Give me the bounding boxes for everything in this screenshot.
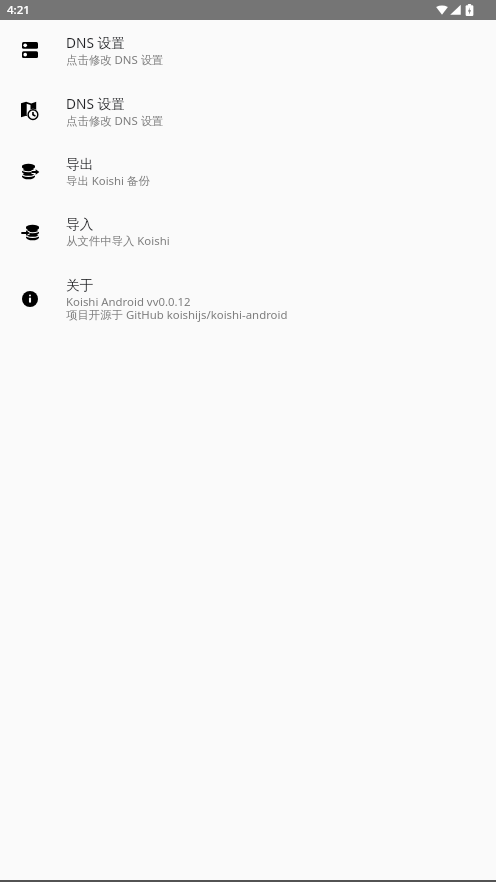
staticText: 点击修改 DNS 设置 [66,113,164,129]
staticText: 从文件中导入 Koishi [66,233,170,249]
staticText: DNS 设置 [66,94,125,113]
staticText: 导出 Koishi 备份 [66,173,150,189]
button[interactable]: DNS 设置 [0,86,496,142]
button[interactable]: 导出 [0,148,496,204]
button[interactable]: 导入 [0,208,496,264]
staticText: 关于 [66,277,94,294]
staticText: 导出 [66,156,94,173]
staticText: 点击修改 DNS 设置 [66,52,164,68]
button[interactable]: DNS 设置 [0,25,496,81]
button[interactable]: 关于 [0,269,496,325]
staticText: 导入 [66,216,94,233]
staticText: Koishi Android vv0.0.12 项目开源于 GitHub koi… [66,294,288,323]
staticText: 4:21 [7,2,30,18]
staticText: DNS 设置 [66,33,125,52]
